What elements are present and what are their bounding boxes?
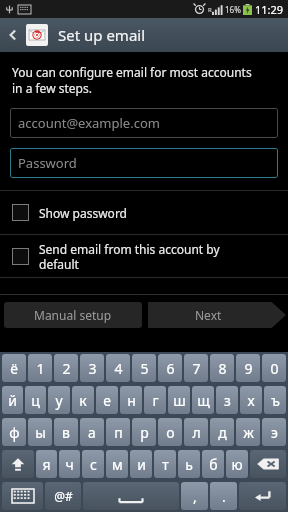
button[interactable]: space — [83, 482, 179, 510]
staticText: R — [208, 6, 212, 14]
button[interactable]: 6 — [158, 354, 182, 382]
button[interactable]: к — [72, 386, 94, 414]
button[interactable]: б — [202, 450, 224, 478]
staticText: р — [140, 423, 149, 442]
button[interactable]: Show password — [0, 191, 288, 234]
button[interactable]: д — [210, 418, 234, 446]
button[interactable]: л — [184, 418, 208, 446]
staticText: 6 — [166, 359, 175, 378]
staticText: б — [209, 455, 218, 474]
staticText: ё — [10, 359, 18, 378]
staticText: 3 — [88, 359, 97, 378]
staticText: 1 — [36, 359, 45, 378]
button[interactable]: г — [144, 386, 166, 414]
staticText: Next — [195, 307, 222, 323]
button[interactable]: 0 — [262, 354, 286, 382]
button[interactable]: е — [96, 386, 118, 414]
staticText: м — [112, 455, 123, 474]
staticText: ч — [65, 455, 74, 474]
button[interactable]: 7 — [184, 354, 208, 382]
staticText: э — [271, 423, 278, 442]
staticText: г — [152, 391, 159, 410]
button[interactable]: 1 — [28, 354, 52, 382]
button[interactable]: Back — [0, 18, 26, 52]
staticText: о — [166, 423, 175, 442]
staticText: Show password — [39, 205, 127, 221]
button[interactable]: ы — [28, 418, 52, 446]
staticText: с — [90, 455, 97, 474]
button[interactable]: н — [120, 386, 142, 414]
button[interactable]: Next — [148, 302, 286, 328]
staticText: е — [103, 391, 111, 410]
button[interactable]: р — [132, 418, 156, 446]
button[interactable]: м — [106, 450, 128, 478]
button[interactable]: и — [130, 450, 152, 478]
button[interactable]: 4 — [106, 354, 130, 382]
button[interactable]: back — [250, 450, 286, 478]
staticText: ъ — [271, 391, 280, 410]
staticText: 8 — [218, 359, 227, 378]
staticText: х — [247, 391, 255, 410]
button[interactable]: о — [158, 418, 182, 446]
staticText: You can configure email for most account… — [12, 64, 252, 96]
staticText: 16% — [225, 4, 241, 15]
staticText: у — [55, 391, 63, 410]
button[interactable]: т — [154, 450, 176, 478]
button[interactable]: я — [36, 450, 57, 478]
button[interactable]: Manual setup — [4, 302, 142, 328]
staticText: ц — [31, 391, 40, 410]
staticText: й — [8, 391, 17, 410]
staticText: Password — [18, 154, 77, 172]
staticText: щ — [197, 391, 210, 410]
button[interactable]: ъ — [264, 386, 286, 414]
button[interactable]: , — [181, 482, 208, 510]
button[interactable]: enter — [239, 482, 286, 510]
button[interactable]: з — [216, 386, 238, 414]
button[interactable]: у — [48, 386, 70, 414]
staticText: т — [162, 455, 169, 474]
staticText: Manual setup — [34, 307, 112, 323]
button[interactable]: э — [262, 418, 286, 446]
staticText: в — [62, 423, 70, 442]
staticText: 0 — [270, 359, 279, 378]
button[interactable]: щ — [192, 386, 214, 414]
staticText: к — [79, 391, 87, 410]
button[interactable]: в — [54, 418, 78, 446]
button[interactable]: ф — [2, 418, 26, 446]
button[interactable]: 2 — [54, 354, 78, 382]
button[interactable]: ь — [178, 450, 200, 478]
button[interactable]: п — [106, 418, 130, 446]
staticText: з — [224, 391, 231, 410]
staticText: Send email from this account by default — [39, 241, 220, 272]
button[interactable]: х — [240, 386, 262, 414]
staticText: @# — [54, 488, 73, 504]
button[interactable]: с — [82, 450, 104, 478]
button[interactable]: ж — [236, 418, 260, 446]
button[interactable]: 3 — [80, 354, 104, 382]
button[interactable]: @# — [45, 482, 81, 510]
button[interactable]: kb — [2, 482, 43, 510]
button[interactable]: а — [80, 418, 104, 446]
staticText: д — [218, 423, 227, 442]
button[interactable]: Send email from this account by default — [0, 235, 288, 277]
button[interactable]: Password — [10, 148, 278, 178]
button[interactable]: account@example.com — [10, 108, 278, 138]
staticText: 7 — [192, 359, 201, 378]
staticText: я — [42, 455, 51, 474]
button[interactable]: ё — [2, 354, 26, 382]
button[interactable]: й — [2, 386, 23, 414]
button[interactable]: ц — [25, 386, 46, 414]
button[interactable]: ш — [168, 386, 190, 414]
button[interactable]: shift — [2, 450, 34, 478]
staticText: Set up email — [58, 25, 146, 45]
staticText: и — [137, 455, 146, 474]
button[interactable]: ю — [226, 450, 248, 478]
button[interactable]: 8 — [210, 354, 234, 382]
button[interactable]: 9 — [236, 354, 260, 382]
staticText: ь — [185, 455, 193, 474]
staticText: н — [127, 391, 136, 410]
staticText: п — [114, 423, 123, 442]
button[interactable]: 5 — [132, 354, 156, 382]
button[interactable]: . — [210, 482, 237, 510]
button[interactable]: ч — [59, 450, 80, 478]
